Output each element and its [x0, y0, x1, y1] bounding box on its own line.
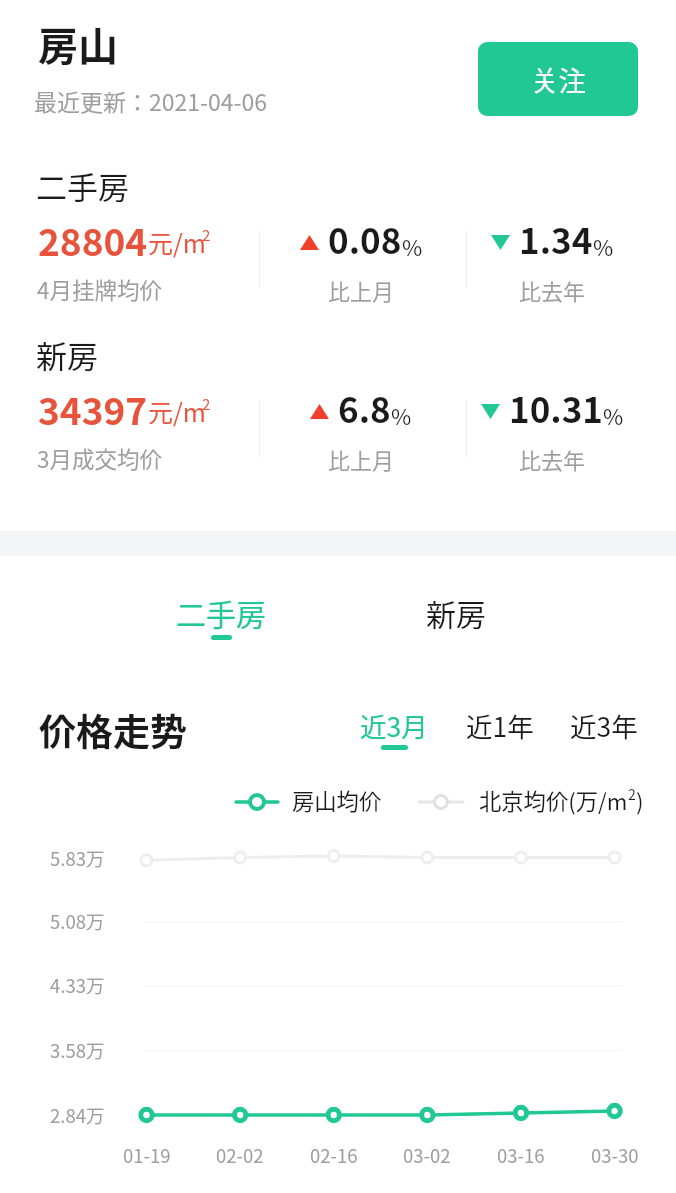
staticText: 2	[628, 784, 636, 804]
staticText: %	[391, 399, 412, 431]
staticText: %	[603, 399, 624, 431]
staticText: 近3年	[570, 706, 638, 744]
staticText: 02-16	[310, 1142, 358, 1169]
staticText: )	[636, 784, 644, 816]
staticText: 2	[202, 393, 211, 415]
staticText: %	[402, 230, 423, 262]
staticText: 4.33万	[50, 972, 105, 999]
staticText: 比去年	[519, 274, 586, 306]
staticText: 03-02	[403, 1142, 451, 1169]
staticText: 3月成交均价	[37, 442, 162, 475]
button[interactable]: 新房	[376, 577, 536, 649]
staticText: 最近更新：2021-04-06	[34, 84, 268, 117]
button[interactable]: 关注	[478, 42, 638, 116]
button[interactable]: 近1年	[445, 694, 555, 756]
staticText: 2	[202, 224, 211, 246]
staticText: 34397	[38, 382, 148, 436]
staticText: 4月挂牌均价	[37, 273, 162, 306]
staticText: 二手房	[176, 591, 266, 634]
staticText: 新房	[36, 332, 98, 377]
staticText: 1.34	[519, 213, 593, 264]
staticText: 比去年	[519, 443, 586, 475]
staticText: 新房	[426, 591, 486, 634]
staticText: 价格走势	[39, 703, 187, 757]
staticText: 比上月	[328, 443, 395, 475]
staticText: 北京均价(万/m	[479, 784, 628, 816]
staticText: 3.58万	[50, 1037, 105, 1064]
staticText: 二手房	[36, 163, 129, 208]
staticText: %	[593, 230, 614, 262]
staticText: 01-19	[123, 1142, 171, 1169]
button[interactable]: 近3月	[339, 694, 449, 756]
staticText: 比上月	[328, 274, 395, 306]
staticText: 近3月	[360, 706, 428, 744]
staticText: 0.08	[328, 213, 402, 264]
staticText: 元/m	[148, 393, 206, 429]
staticText: 28804	[38, 213, 148, 267]
staticText: 03-16	[497, 1142, 545, 1169]
staticText: 5.83万	[50, 845, 105, 872]
button[interactable]: 近3年	[549, 694, 659, 756]
staticText: 5.08万	[50, 908, 105, 935]
staticText: 03-30	[591, 1142, 639, 1169]
staticText: 2.84万	[50, 1102, 105, 1129]
staticText: 10.31	[509, 382, 603, 433]
staticText: 近1年	[466, 706, 534, 744]
button[interactable]: 二手房	[141, 577, 301, 649]
staticText: 6.8	[338, 382, 391, 433]
staticText: 关注	[531, 59, 586, 99]
staticText: 02-02	[216, 1142, 264, 1169]
staticText: 房山均价	[292, 784, 382, 816]
staticText: 房山	[38, 15, 118, 73]
staticText: 元/m	[148, 224, 206, 260]
